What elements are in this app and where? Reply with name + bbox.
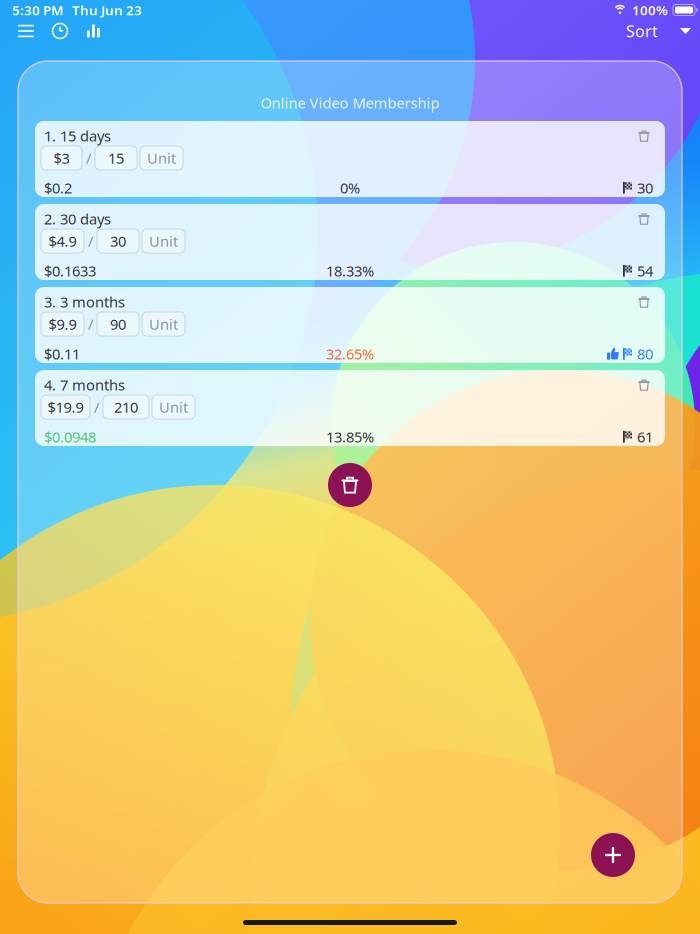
staticText: /	[88, 231, 93, 251]
staticText: Unit	[149, 314, 178, 334]
staticText: $0.0948	[44, 427, 96, 446]
button[interactable]: Menu	[9, 16, 43, 46]
staticText: Thu Jun 23	[72, 1, 142, 19]
button[interactable]: Statistics	[77, 16, 111, 46]
button[interactable]: $3	[41, 146, 82, 170]
staticText: 90	[110, 314, 126, 334]
button[interactable]: 210	[103, 395, 149, 419]
button[interactable]: $4.9	[41, 229, 84, 253]
staticText: $3	[53, 148, 69, 168]
staticText: 2. 30 days	[44, 209, 111, 228]
staticText: 100%	[632, 1, 668, 19]
staticText: Sort	[626, 20, 658, 42]
staticText: 1. 15 days	[44, 126, 111, 145]
staticText: $0.2	[44, 178, 72, 197]
button[interactable]: 15	[95, 146, 137, 170]
button[interactable]: History	[43, 16, 77, 46]
staticText: 80	[637, 344, 653, 363]
staticText: Unit	[149, 231, 178, 251]
button[interactable]: Add item	[591, 833, 635, 877]
staticText: 4. 7 months	[44, 375, 125, 394]
button[interactable]: 30	[97, 229, 139, 253]
staticText: 30	[110, 231, 126, 251]
staticText: Online Video Membership	[260, 93, 439, 112]
button[interactable]: Unit	[140, 146, 183, 170]
button[interactable]: Delete 3. 3 months	[629, 290, 659, 314]
staticText: $9.9	[48, 314, 76, 334]
button[interactable]: Delete 1. 15 days	[629, 124, 659, 148]
button[interactable]: Delete selected items	[328, 463, 372, 507]
staticText: Unit	[159, 397, 188, 417]
button[interactable]: Unit	[142, 312, 185, 336]
staticText: 0%	[340, 178, 360, 197]
staticText: 210	[114, 397, 138, 417]
staticText: Unit	[147, 148, 176, 168]
button[interactable]: $19.9	[41, 395, 90, 419]
button[interactable]: $9.9	[41, 312, 84, 336]
button[interactable]: Sort	[626, 16, 691, 46]
staticText: $4.9	[48, 231, 76, 251]
staticText: /	[94, 397, 99, 417]
staticText: 5:30 PM	[12, 1, 63, 19]
button[interactable]: Unit	[142, 229, 185, 253]
staticText: 15	[108, 148, 124, 168]
staticText: 32.65%	[326, 344, 374, 363]
staticText: 13.85%	[326, 427, 374, 446]
staticText: /	[88, 314, 93, 334]
button[interactable]: 90	[97, 312, 139, 336]
button[interactable]: Unit	[152, 395, 195, 419]
staticText: 3. 3 months	[44, 292, 125, 311]
button[interactable]: Delete 4. 7 months	[629, 373, 659, 397]
staticText: 18.33%	[326, 261, 374, 280]
staticText: /	[86, 148, 91, 168]
staticText: 30	[637, 178, 653, 197]
staticText: $19.9	[47, 397, 83, 417]
staticText: $0.11	[44, 344, 80, 363]
button[interactable]: Delete 2. 30 days	[629, 207, 659, 231]
staticText: 61	[637, 427, 653, 446]
staticText: 54	[637, 261, 653, 280]
staticText: $0.1633	[44, 261, 96, 280]
